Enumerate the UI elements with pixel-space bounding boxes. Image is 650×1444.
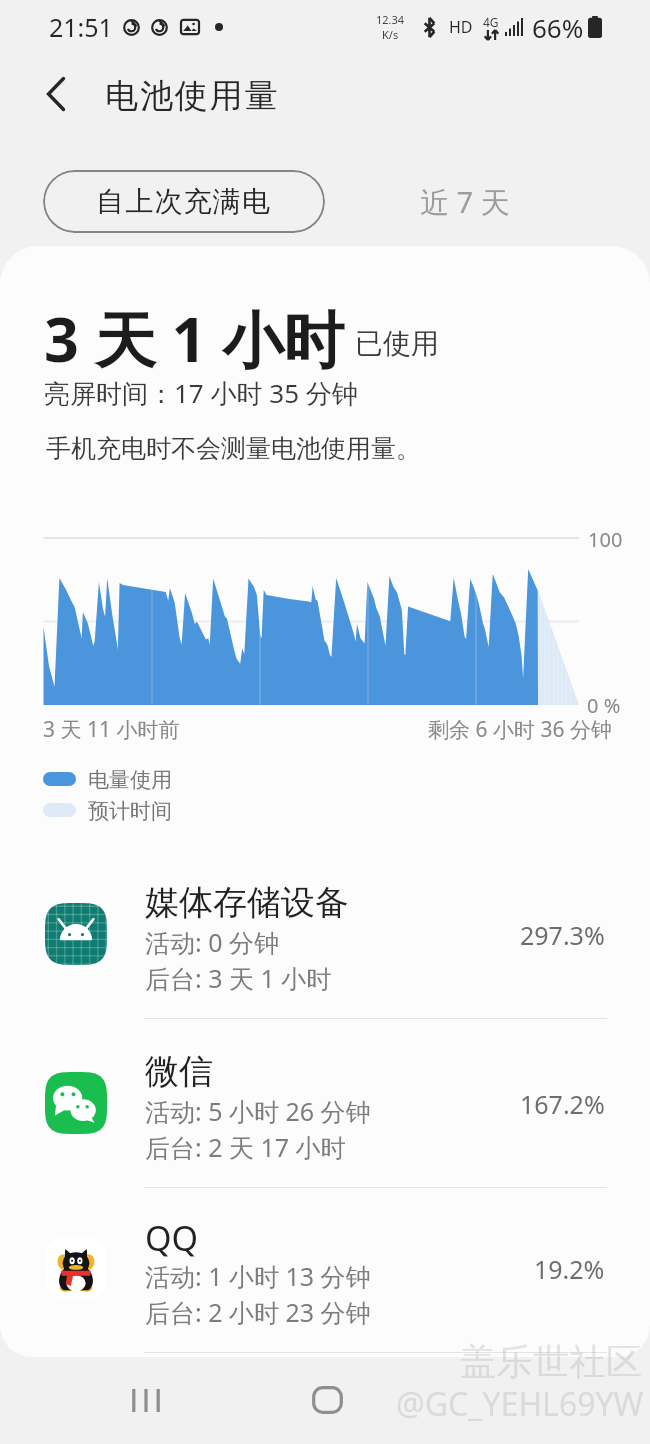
staticText: 12.34 — [376, 12, 405, 27]
button[interactable]: 近 7 天 — [400, 170, 530, 233]
staticText: 微信 — [145, 1050, 213, 1093]
staticText: 已使用 — [355, 326, 439, 361]
staticText: K/s — [382, 27, 399, 42]
staticText: 后台: 2 小时 23 分钟 — [145, 1295, 371, 1329]
staticText: 0 % — [587, 692, 621, 719]
staticText: 297.3% — [520, 918, 605, 952]
staticText: 活动: 0 分钟 — [145, 925, 280, 959]
staticText: 预计时间 — [88, 798, 172, 824]
staticText: 媒体存储设备 — [145, 881, 349, 924]
staticText: 21:51 — [49, 10, 113, 44]
staticText: 后台: 3 天 1 小时 — [145, 961, 332, 995]
staticText: 后台: 2 天 17 小时 — [145, 1130, 346, 1164]
staticText: 活动: 1 小时 13 分钟 — [145, 1259, 371, 1293]
staticText: 19.2% — [534, 1252, 605, 1286]
button[interactable]: 微信 — [0, 1042, 650, 1164]
button[interactable]: Back — [468, 1370, 548, 1430]
button[interactable]: Recent apps — [106, 1370, 186, 1430]
staticText: 电池使用量 — [105, 75, 280, 117]
staticText: 3 天 1 小时 — [44, 297, 345, 380]
staticText: 盖乐世社区 — [460, 1339, 643, 1384]
staticText: 自上次充满电 — [96, 184, 272, 219]
staticText: @GC_YEHL69YW — [396, 1382, 644, 1426]
button[interactable]: Home — [287, 1370, 367, 1430]
button[interactable]: 自上次充满电 — [43, 170, 325, 233]
button[interactable]: 媒体存储设备 — [0, 873, 650, 995]
staticText: 4G — [483, 14, 499, 30]
staticText: QQ — [145, 1215, 199, 1261]
button[interactable]: QQ — [0, 1207, 650, 1329]
staticText: 167.2% — [520, 1087, 605, 1121]
staticText: 3 天 11 小时前 — [43, 715, 180, 744]
staticText: 手机充电时不会测量电池使用量。 — [46, 433, 421, 464]
staticText: 剩余 6 小时 36 分钟 — [428, 715, 612, 744]
staticText: 电量使用 — [88, 767, 172, 793]
staticText: 活动: 5 小时 26 分钟 — [145, 1094, 371, 1128]
staticText: HD — [449, 16, 473, 38]
staticText: 近 7 天 — [420, 182, 510, 222]
staticText: 100 — [588, 526, 623, 553]
staticText: 亮屏时间：17 小时 35 分钟 — [44, 375, 358, 411]
button[interactable]: Back — [32, 70, 80, 118]
staticText: 66% — [532, 10, 584, 45]
